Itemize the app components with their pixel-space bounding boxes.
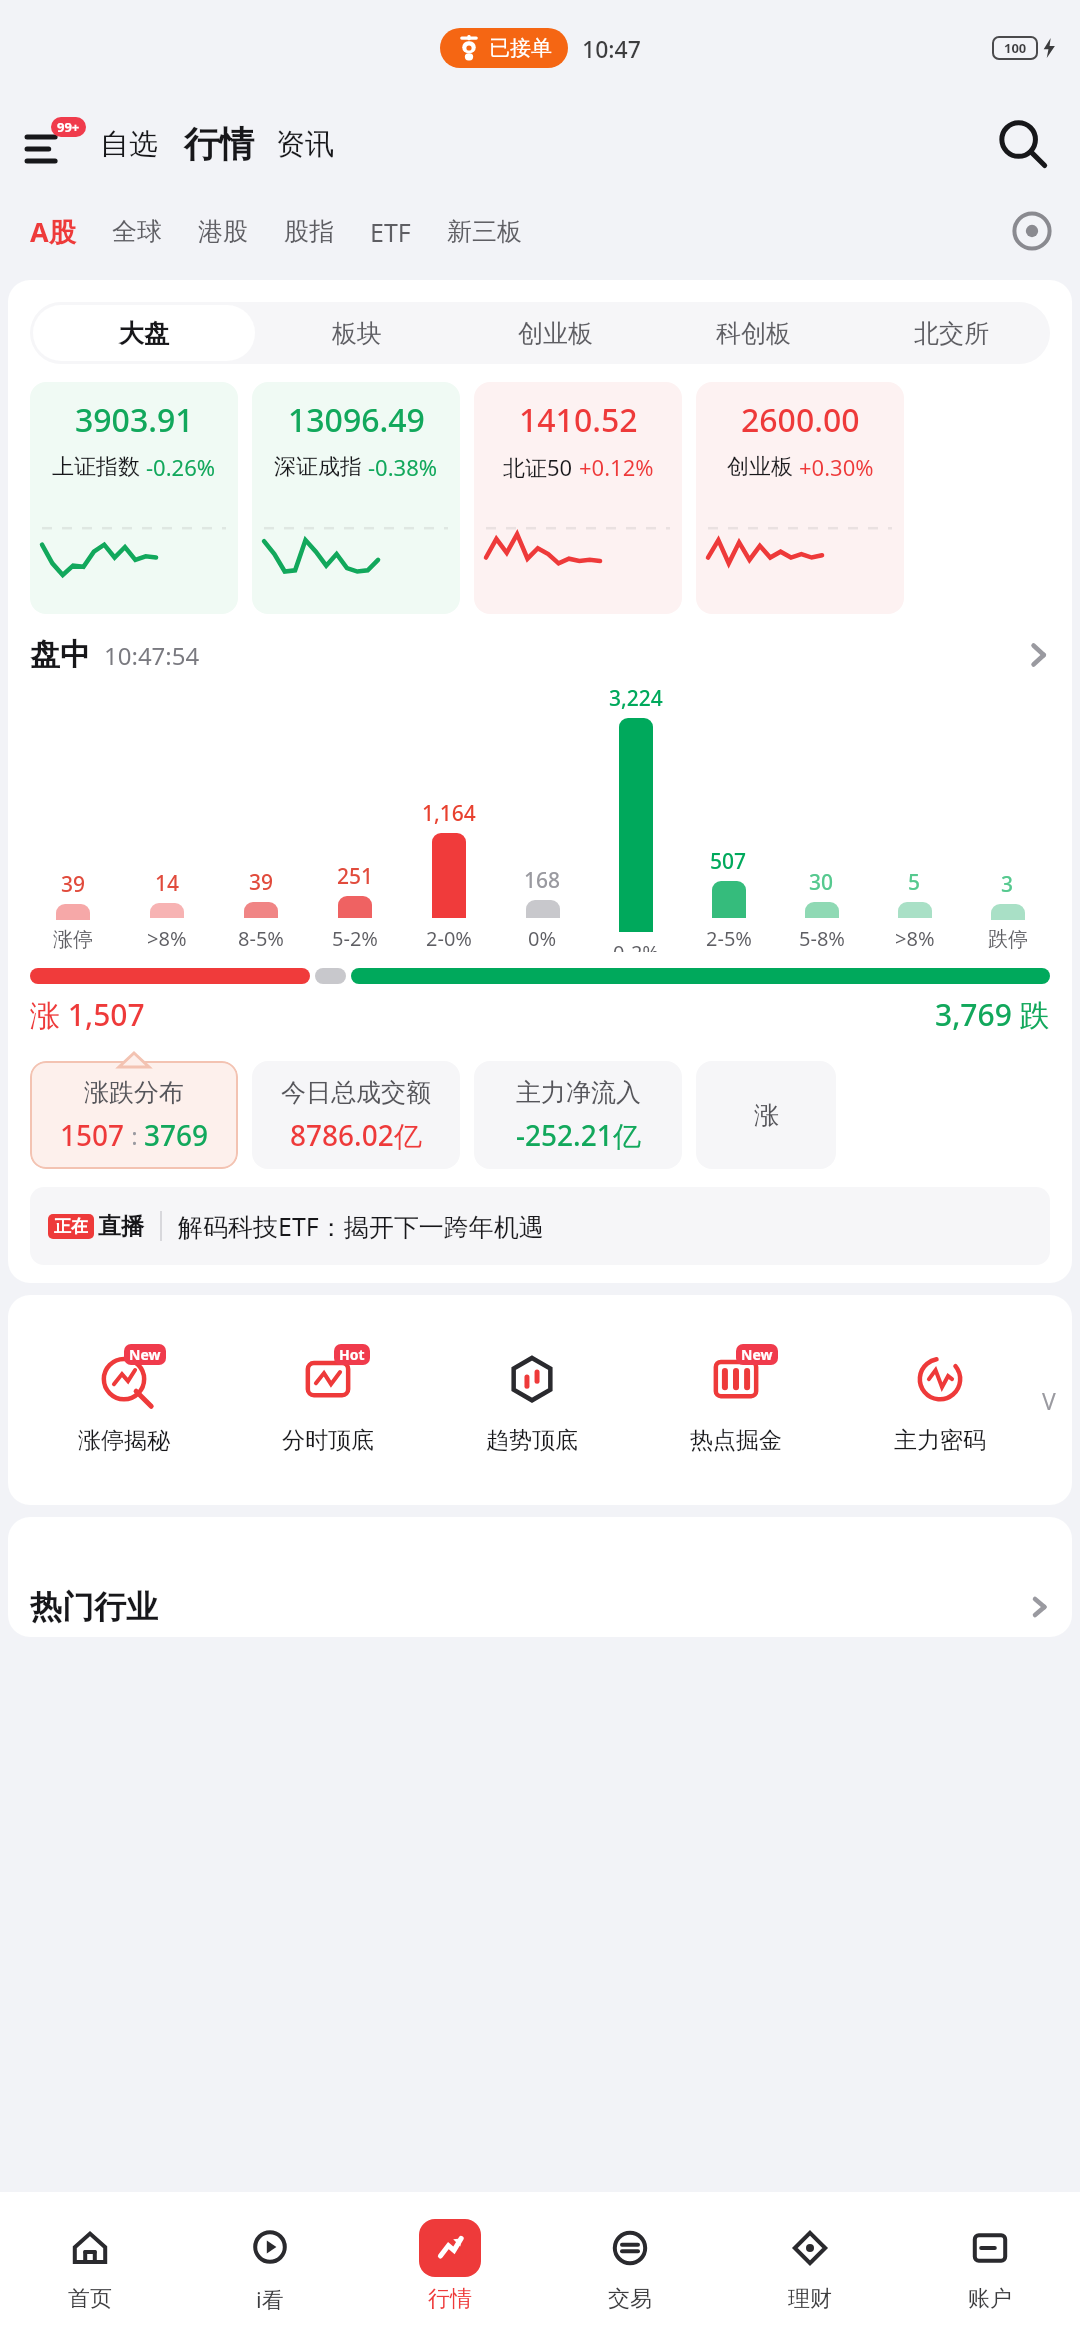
button[interactable]: 科创板 [657, 305, 849, 361]
staticText: 热门行业 [30, 1587, 158, 1627]
staticText: 1,164 [422, 799, 476, 828]
staticText: 主力密码 [894, 1426, 986, 1455]
staticText: 深证成指 [274, 453, 362, 481]
staticText: i看 [256, 2284, 284, 2314]
button[interactable]: 大盘 [33, 305, 255, 361]
staticText: 交易 [608, 2285, 652, 2313]
staticText: 8-5% [238, 925, 284, 952]
button[interactable]: 自选 [100, 126, 158, 163]
button[interactable]: 已接单 [440, 28, 568, 68]
staticText: V [1042, 1385, 1056, 1416]
staticText: 股指 [284, 216, 334, 247]
staticText: 涨停 [53, 927, 93, 952]
button[interactable]: 今日总成交额 [252, 1061, 460, 1169]
button[interactable]: i看 [180, 2192, 360, 2340]
button[interactable]: 理财 [720, 2192, 900, 2340]
staticText: 今日总成交额 [281, 1077, 431, 1108]
button[interactable]: 新三板 [445, 216, 524, 247]
button[interactable]: 账户 [900, 2192, 1080, 2340]
staticText: 5 [908, 868, 921, 897]
staticText: 首页 [68, 2285, 112, 2313]
staticText: 5-2% [332, 925, 378, 952]
button[interactable]: 创业板 [459, 305, 651, 361]
staticText: 3769 [144, 1116, 209, 1154]
staticText: 大盘 [119, 318, 169, 349]
staticText: 创业板 [518, 318, 593, 349]
staticText: 主力净流入 [516, 1077, 641, 1108]
button[interactable]: New [22, 1338, 226, 1463]
staticText: Hot [339, 1345, 365, 1364]
button[interactable]: Menu [26, 119, 78, 169]
staticText: 14 [155, 869, 180, 898]
staticText: A股 [30, 213, 76, 250]
staticText: 8786.02亿 [290, 1116, 422, 1154]
staticText: 全球 [112, 216, 162, 247]
staticText: 港股 [198, 216, 248, 247]
button[interactable]: Settings [1010, 209, 1054, 253]
button[interactable]: A股 [28, 213, 78, 250]
button[interactable]: 首页 [0, 2192, 180, 2340]
staticText: 5-8% [799, 925, 845, 952]
staticText: 已接单 [489, 35, 552, 61]
button[interactable]: 港股 [196, 216, 250, 247]
staticText: 行情 [428, 2285, 472, 2313]
staticText: 板块 [332, 318, 382, 349]
staticText: 3,769 跌 [935, 994, 1050, 1035]
staticText: 资讯 [276, 126, 334, 163]
button[interactable]: 主力密码 [838, 1338, 1042, 1463]
staticText: 分时顶底 [282, 1426, 374, 1455]
staticText: 理财 [788, 2285, 832, 2313]
button[interactable]: 股指 [282, 216, 336, 247]
staticText: 账户 [968, 2285, 1012, 2313]
staticText: 0% [528, 925, 557, 952]
button[interactable]: 主力净流入 [474, 1061, 682, 1169]
staticText: 100 [1004, 39, 1027, 57]
staticText: 2-0% [426, 925, 472, 952]
staticText: 上证指数 [52, 453, 140, 481]
button[interactable]: 13096.49 [252, 382, 460, 614]
button[interactable]: 正在 [30, 1187, 1050, 1265]
button[interactable]: 2600.00 [696, 382, 904, 614]
staticText: 3903.91 [75, 398, 194, 442]
staticText: 1410.52 [519, 398, 638, 442]
staticText: 0-2% [613, 939, 659, 952]
staticText: 涨 1,507 [30, 994, 145, 1035]
button[interactable]: 涨跌分布 [30, 1061, 238, 1169]
button[interactable]: Hot [226, 1338, 430, 1463]
button[interactable]: ETF [368, 215, 413, 249]
button[interactable]: 行情 [360, 2192, 540, 2340]
staticText: : [125, 1119, 144, 1152]
staticText: 自选 [100, 126, 158, 163]
staticText: 2600.00 [741, 398, 860, 442]
staticText: ETF [370, 215, 411, 249]
button[interactable]: 全球 [110, 216, 164, 247]
button[interactable]: 3903.91 [30, 382, 238, 614]
staticText: 北交所 [914, 318, 989, 349]
staticText: 新三板 [447, 216, 522, 247]
button[interactable]: 交易 [540, 2192, 720, 2340]
staticText: -0.26% [146, 452, 216, 482]
staticText: 涨停揭秘 [78, 1426, 170, 1455]
button[interactable]: 行情 [184, 122, 254, 166]
staticText: 解码科技ETF：揭开下一跨年机遇 [178, 1209, 544, 1243]
staticText: 99+ [57, 118, 80, 136]
button[interactable]: 资讯 [276, 126, 334, 163]
staticText: >8% [895, 925, 935, 952]
staticText: 创业板 [727, 453, 793, 481]
button[interactable]: 趋势顶底 [430, 1338, 634, 1463]
button[interactable]: 1410.52 [474, 382, 682, 614]
button[interactable]: New [634, 1338, 838, 1463]
button[interactable]: 涨 [696, 1061, 836, 1169]
button[interactable]: 北交所 [855, 305, 1047, 361]
staticText: -252.21亿 [516, 1116, 641, 1154]
staticText: 趋势顶底 [486, 1426, 578, 1455]
staticText: New [129, 1345, 161, 1364]
button[interactable]: Search [994, 116, 1050, 172]
staticText: >8% [147, 925, 187, 952]
button[interactable]: 盘中 [8, 636, 1072, 674]
button[interactable]: 热门行业 [8, 1517, 1072, 1637]
staticText: 2-5% [706, 925, 752, 952]
staticText: 盘中 [30, 636, 90, 674]
button[interactable]: 板块 [261, 305, 453, 361]
staticText: 10:47 [582, 33, 641, 64]
